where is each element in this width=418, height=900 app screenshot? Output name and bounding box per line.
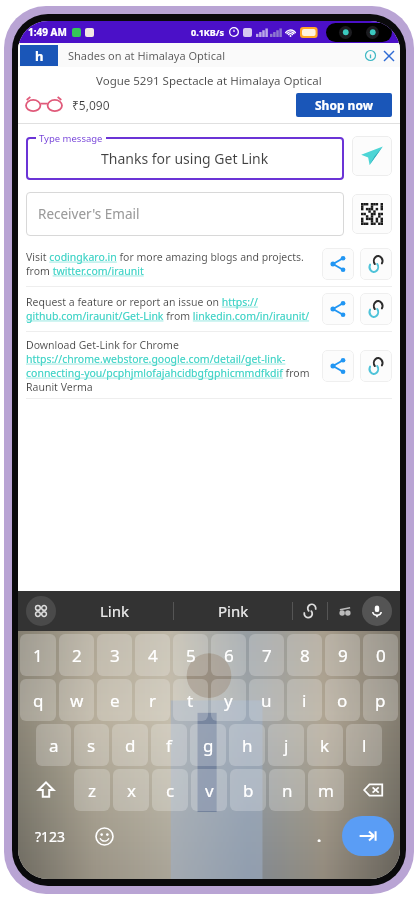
- staticText: ?123: [35, 827, 66, 846]
- button[interactable]: Thanks for using Get Link: [26, 132, 344, 180]
- button[interactable]: Shop now: [296, 93, 392, 117]
- staticText: r: [149, 689, 157, 712]
- button[interactable]: Scan QR code: [352, 194, 392, 234]
- button[interactable]: Link: [56, 601, 173, 621]
- button[interactable]: Share: [322, 293, 354, 325]
- button[interactable]: h: [18, 43, 400, 67]
- button[interactable]: .: [299, 814, 339, 858]
- button[interactable]: z: [74, 769, 110, 811]
- button[interactable]: Receiver's Email: [26, 192, 344, 236]
- button[interactable]: Backspace: [347, 769, 398, 811]
- button[interactable]: n: [269, 769, 305, 811]
- button[interactable]: Keyboard options: [26, 596, 56, 626]
- button[interactable]: p: [363, 679, 398, 721]
- button[interactable]: Voice input: [362, 596, 392, 626]
- button[interactable]: q: [20, 679, 56, 721]
- staticText: a: [49, 734, 59, 757]
- button[interactable]: Ad info: [362, 47, 379, 64]
- button[interactable]: Copy link: [360, 293, 392, 325]
- button[interactable]: Space: [127, 814, 296, 858]
- button[interactable]: t: [173, 679, 208, 721]
- staticText: n: [282, 779, 293, 802]
- button[interactable]: c: [152, 769, 188, 811]
- button[interactable]: 5: [173, 634, 208, 676]
- button[interactable]: 3: [97, 634, 132, 676]
- button[interactable]: b: [230, 769, 266, 811]
- button[interactable]: Share: [322, 350, 354, 382]
- staticText: 1: [33, 644, 43, 667]
- button[interactable]: i: [287, 679, 322, 721]
- button[interactable]: 1: [20, 634, 56, 676]
- staticText: w: [70, 689, 84, 712]
- button[interactable]: u: [249, 679, 284, 721]
- staticText: Link: [100, 601, 130, 621]
- button[interactable]: Stickers: [328, 594, 362, 628]
- staticText: Shop now: [315, 97, 373, 113]
- staticText: 5: [186, 644, 196, 667]
- staticText: h: [242, 734, 253, 757]
- button[interactable]: 0: [363, 634, 398, 676]
- button[interactable]: o: [325, 679, 360, 721]
- staticText: 4: [148, 644, 158, 667]
- staticText: 8: [300, 644, 310, 667]
- staticText: Request a feature or report an issue on …: [26, 295, 316, 323]
- staticText: Type message: [39, 132, 103, 145]
- staticText: e: [110, 689, 120, 712]
- button[interactable]: Copy link: [360, 350, 392, 382]
- button[interactable]: Copy link: [360, 248, 392, 280]
- button[interactable]: 8: [287, 634, 322, 676]
- staticText: Visit codingkaro.in for more amazing blo…: [26, 250, 316, 278]
- button[interactable]: w: [59, 679, 94, 721]
- staticText: m: [318, 779, 334, 802]
- staticText: b: [243, 779, 254, 802]
- button[interactable]: l: [346, 724, 382, 766]
- button[interactable]: h: [229, 724, 265, 766]
- button[interactable]: s: [74, 724, 109, 766]
- button[interactable]: ?123: [20, 814, 81, 858]
- button[interactable]: Share: [322, 248, 354, 280]
- staticText: 1:49 AM: [28, 25, 67, 39]
- staticText: Thanks for using Get Link: [101, 149, 269, 168]
- button[interactable]: x: [113, 769, 149, 811]
- staticText: Shades on at Himalaya Optical: [68, 48, 225, 63]
- button[interactable]: Send message: [352, 136, 392, 176]
- button[interactable]: a: [36, 724, 71, 766]
- staticText: q: [33, 689, 44, 712]
- staticText: .: [317, 826, 322, 846]
- button[interactable]: Vogue 5291 Spectacle at Himalaya Optical: [18, 67, 400, 123]
- button[interactable]: 4: [135, 634, 170, 676]
- button[interactable]: Pink: [174, 601, 292, 621]
- button[interactable]: 7: [249, 634, 284, 676]
- staticText: k: [320, 734, 330, 757]
- staticText: 9: [338, 644, 348, 667]
- staticText: Pink: [218, 601, 249, 621]
- button[interactable]: j: [268, 724, 304, 766]
- button[interactable]: k: [307, 724, 343, 766]
- staticText: l: [362, 734, 367, 757]
- staticText: h: [35, 47, 44, 65]
- button[interactable]: 6: [211, 634, 246, 676]
- button[interactable]: e: [97, 679, 132, 721]
- button[interactable]: g: [190, 724, 226, 766]
- button[interactable]: Shift: [20, 769, 71, 811]
- staticText: 0.1KB/s: [191, 26, 225, 38]
- staticText: 2: [72, 644, 82, 667]
- staticText: f: [166, 734, 172, 757]
- button[interactable]: m: [308, 769, 344, 811]
- staticText: t: [187, 689, 194, 712]
- button[interactable]: y: [211, 679, 246, 721]
- staticText: 6: [224, 644, 234, 667]
- staticText: Receiver's Email: [38, 205, 140, 223]
- button[interactable]: Emoji: [84, 814, 124, 858]
- staticText: p: [375, 689, 386, 712]
- staticText: s: [87, 734, 96, 757]
- button[interactable]: Insert link: [293, 594, 327, 628]
- button[interactable]: 2: [59, 634, 94, 676]
- button[interactable]: Close ad: [379, 46, 398, 65]
- button[interactable]: r: [135, 679, 170, 721]
- button[interactable]: Enter: [342, 816, 394, 856]
- button[interactable]: v: [191, 769, 227, 811]
- button[interactable]: f: [151, 724, 187, 766]
- button[interactable]: d: [112, 724, 148, 766]
- button[interactable]: 9: [325, 634, 360, 676]
